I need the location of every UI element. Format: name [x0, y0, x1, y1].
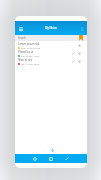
button[interactable]: Edit	[70, 58, 76, 64]
button[interactable]: Phasellus ut	[15, 49, 87, 57]
staticText: My Notes	[45, 26, 57, 30]
button[interactable]: Delete	[76, 42, 82, 48]
button[interactable]: Add note	[45, 146, 60, 154]
button[interactable]: Nam at nisl	[15, 57, 87, 65]
staticText: Phasellus ut	[18, 50, 34, 54]
button[interactable]: Menu	[16, 24, 25, 33]
button[interactable]: Notes	[27, 154, 43, 163]
button[interactable]: Archive	[43, 154, 59, 163]
staticText: Mon, 10 Apr, 07:38	[21, 47, 40, 49]
button[interactable]: Bookmark	[79, 35, 83, 41]
button[interactable]: Trends	[59, 154, 75, 163]
button[interactable]: Search	[15, 35, 87, 41]
staticText: Sat, 11 May, 08:55	[21, 63, 40, 65]
button[interactable]: More options	[77, 24, 86, 33]
button[interactable]: Edit	[70, 50, 76, 56]
staticText: Lorem ipsum dol	[18, 42, 40, 46]
button[interactable]: Delete	[76, 58, 82, 64]
button[interactable]: Lorem ipsum dol	[15, 41, 87, 49]
staticText: Sun, 09 Apr, 19:20	[21, 55, 40, 57]
staticText: Nam at nisl	[18, 58, 33, 62]
staticText: Search	[18, 36, 27, 40]
button[interactable]: Delete	[76, 50, 82, 56]
